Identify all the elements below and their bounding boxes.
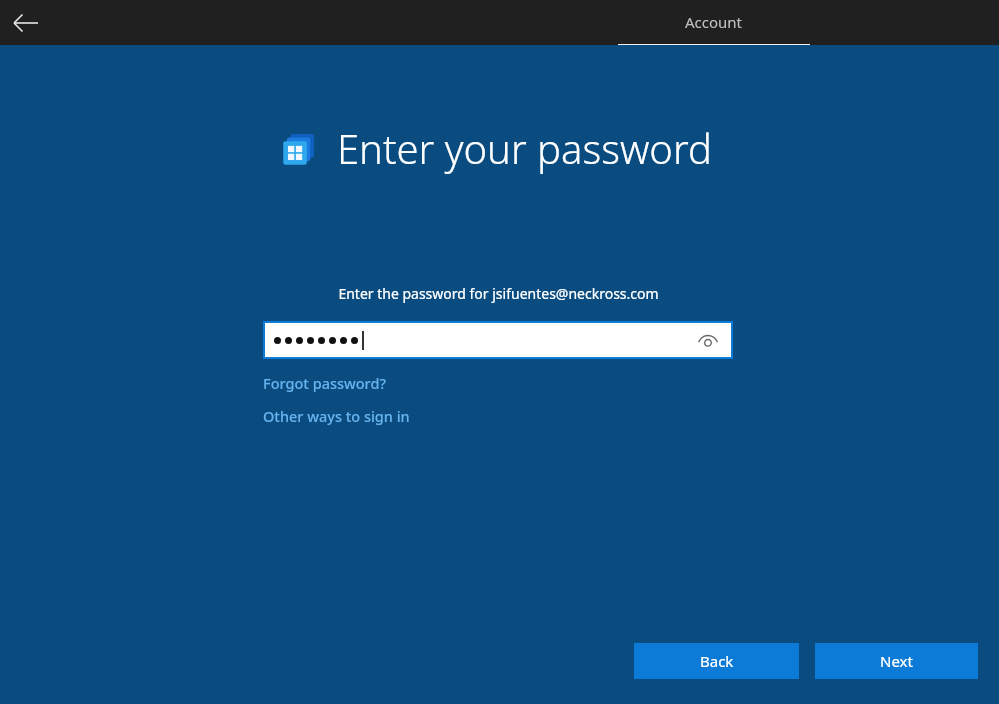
- button[interactable]: Forgot password?: [263, 373, 386, 393]
- button[interactable]: Show password: [693, 325, 723, 355]
- staticText: Next: [880, 651, 913, 671]
- button[interactable]: Back: [634, 643, 799, 679]
- staticText: Account: [685, 12, 743, 32]
- button[interactable]: Other ways to sign in: [263, 406, 410, 426]
- button[interactable]: Next: [815, 643, 978, 679]
- button[interactable]: Account: [618, 0, 810, 45]
- button[interactable]: Back: [6, 0, 46, 45]
- staticText: Back: [700, 651, 734, 671]
- staticText: Enter the password for jsifuentes@neckro…: [338, 284, 659, 303]
- staticText: Other ways to sign in: [263, 406, 410, 426]
- staticText: Forgot password?: [263, 373, 386, 393]
- button[interactable]: Show password: [265, 323, 731, 357]
- staticText: Enter your password: [337, 121, 712, 175]
